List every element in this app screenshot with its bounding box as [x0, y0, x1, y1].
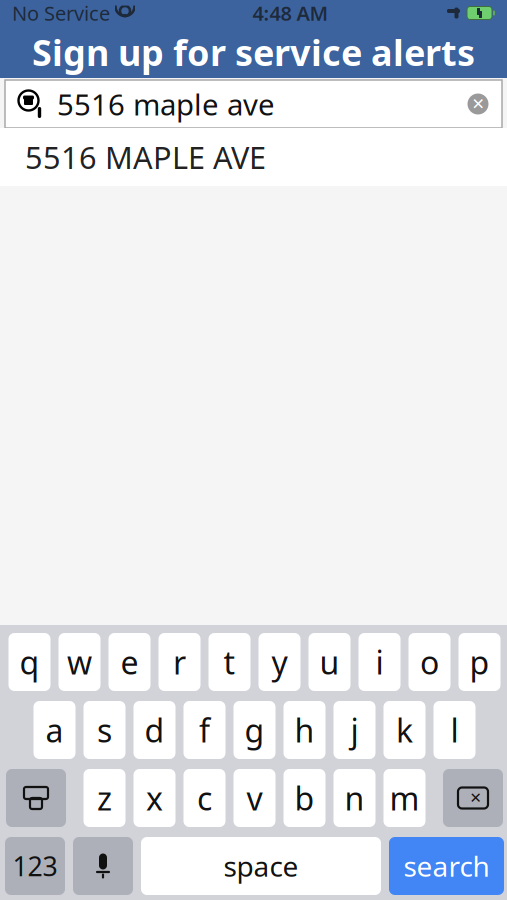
staticText: u	[319, 641, 339, 683]
button[interactable]: Dictate	[73, 837, 133, 895]
button[interactable]: d	[133, 701, 175, 759]
button[interactable]: o	[408, 633, 450, 691]
staticText: s	[97, 709, 112, 751]
staticText: c	[197, 777, 212, 819]
staticText: v	[246, 777, 262, 819]
staticText: o	[420, 641, 439, 683]
staticText: q	[19, 641, 39, 683]
staticText: i	[375, 641, 383, 683]
button[interactable]: space	[141, 837, 381, 895]
staticText: n	[344, 777, 364, 819]
button[interactable]: m	[383, 769, 425, 827]
staticText: z	[97, 777, 112, 819]
button[interactable]: h	[283, 701, 325, 759]
button[interactable]: w	[58, 633, 100, 691]
staticText: Sign up for service alerts	[32, 28, 475, 76]
button[interactable]: u	[308, 633, 350, 691]
staticText: p	[469, 641, 489, 683]
button[interactable]: Delete	[443, 769, 503, 827]
button[interactable]: y	[258, 633, 300, 691]
button[interactable]: k	[383, 701, 425, 759]
staticText: d	[144, 709, 164, 751]
button[interactable]: f	[183, 701, 225, 759]
staticText: k	[396, 709, 413, 751]
button[interactable]: l	[433, 701, 475, 759]
staticText: ✕	[469, 790, 481, 806]
button[interactable]: c	[183, 769, 225, 827]
staticText: search	[403, 847, 489, 885]
button[interactable]: n	[333, 769, 375, 827]
staticText: e	[120, 641, 138, 683]
button[interactable]: z	[83, 769, 125, 827]
button[interactable]: i	[358, 633, 400, 691]
staticText: l	[450, 709, 458, 751]
button[interactable]: q	[8, 633, 50, 691]
staticText: b	[294, 777, 314, 819]
staticText: 4:48 AM	[252, 0, 328, 26]
button[interactable]: p	[458, 633, 500, 691]
staticText: y	[271, 641, 287, 683]
staticText: x	[146, 777, 163, 819]
staticText: g	[244, 709, 264, 751]
staticText: space	[223, 847, 298, 885]
staticText: w	[67, 641, 92, 683]
button[interactable]: b	[283, 769, 325, 827]
button[interactable]: t	[208, 633, 250, 691]
button[interactable]: search	[389, 837, 504, 895]
button[interactable]: s	[83, 701, 125, 759]
staticText: 5516 MAPLE AVE	[25, 137, 266, 177]
button[interactable]: 123	[5, 837, 65, 895]
staticText: No Service	[12, 0, 110, 26]
staticText: ✕	[471, 95, 484, 113]
staticText: a	[45, 709, 63, 751]
staticText: 5516 maple ave	[57, 84, 275, 123]
button[interactable]: a	[33, 701, 75, 759]
staticText: t	[223, 641, 235, 683]
staticText: j	[350, 709, 358, 751]
button[interactable]: Shift	[6, 769, 66, 827]
button[interactable]: r	[158, 633, 200, 691]
staticText: 123	[12, 848, 57, 884]
staticText: f	[199, 709, 210, 751]
button[interactable]: g	[233, 701, 275, 759]
staticText: r	[173, 641, 186, 683]
button[interactable]: e	[108, 633, 150, 691]
button[interactable]: x	[133, 769, 175, 827]
button[interactable]: Clear text	[458, 82, 498, 126]
button[interactable]: 5516 MAPLE AVE	[0, 128, 507, 186]
button[interactable]: j	[333, 701, 375, 759]
button[interactable]: v	[233, 769, 275, 827]
staticText: h	[294, 709, 314, 751]
staticText: m	[389, 777, 419, 819]
